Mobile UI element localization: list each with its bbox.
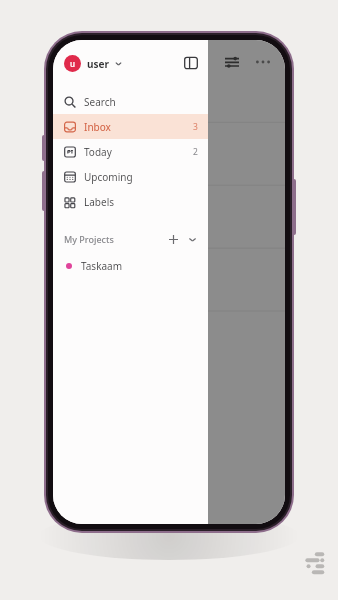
button[interactable]: Collapse projects — [184, 231, 200, 247]
button[interactable]: My Projects — [53, 226, 208, 252]
staticText: user — [87, 57, 109, 71]
button[interactable]: Inbox — [53, 114, 208, 139]
staticText: Labels — [84, 195, 115, 209]
button[interactable]: Upcoming — [53, 164, 208, 189]
staticText: 3 — [193, 121, 198, 133]
staticText: Taskaam — [81, 259, 123, 273]
staticText: Inbox — [84, 120, 111, 134]
button[interactable]: u — [62, 52, 125, 75]
button[interactable]: Today — [53, 139, 208, 164]
staticText: u — [70, 58, 76, 69]
button[interactable]: Taskaam — [53, 254, 208, 278]
button[interactable]: Filter and sort — [222, 52, 242, 72]
button[interactable]: Add project — [165, 231, 181, 247]
staticText: My Projects — [64, 233, 114, 245]
staticText: Search — [84, 95, 116, 109]
button[interactable]: Labels — [53, 189, 208, 214]
staticText: Today — [84, 145, 112, 159]
button[interactable]: More options — [253, 52, 273, 72]
button[interactable]: Search — [53, 89, 208, 114]
staticText: Upcoming — [84, 170, 133, 184]
staticText: 2 — [193, 146, 198, 158]
button[interactable]: Toggle side panel — [180, 52, 202, 74]
